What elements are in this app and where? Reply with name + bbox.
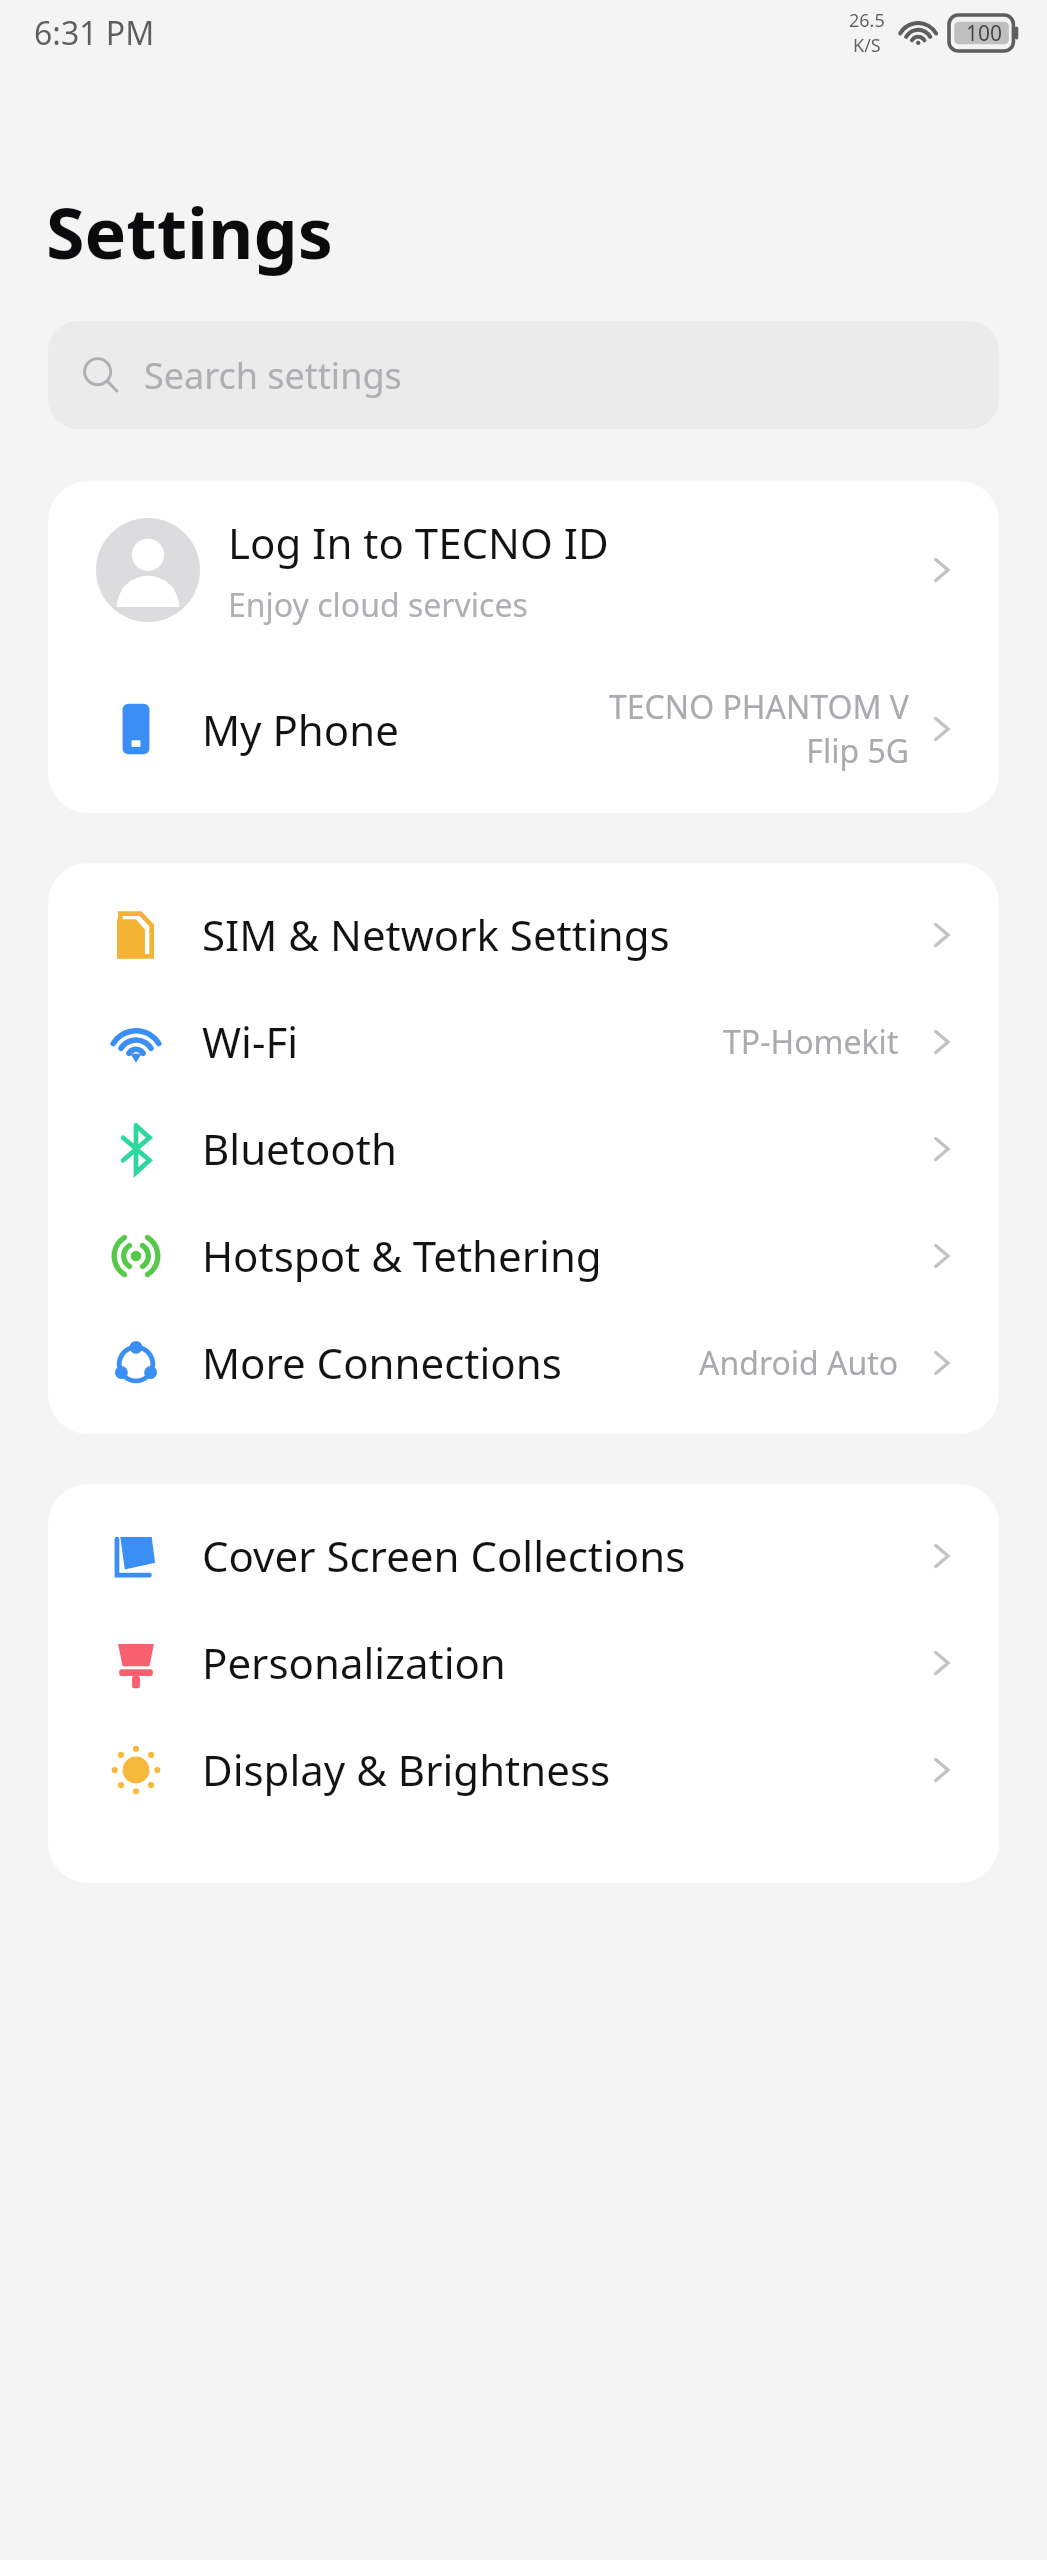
- staticText: SIM & Network Settings: [202, 906, 670, 963]
- button[interactable]: My Phone: [48, 659, 999, 799]
- staticText: Android Auto: [699, 1341, 899, 1385]
- staticText: Search settings: [144, 351, 402, 400]
- button[interactable]: Search: [48, 321, 999, 429]
- button[interactable]: Display & Brightness: [48, 1716, 999, 1823]
- staticText: Personalization: [202, 1634, 506, 1691]
- other: Search: [80, 354, 122, 396]
- staticText: Enjoy cloud services: [228, 583, 528, 627]
- staticText: 6:31 PM: [34, 11, 155, 55]
- staticText: Hotspot & Tethering: [202, 1227, 602, 1284]
- staticText: 100: [966, 19, 1003, 48]
- staticText: Log In to TECNO ID: [228, 514, 609, 571]
- staticText: My Phone: [202, 701, 399, 758]
- staticText: More Connections: [202, 1334, 562, 1391]
- button[interactable]: Wi-Fi: [48, 988, 999, 1095]
- staticText: 26.5: [849, 8, 885, 33]
- button[interactable]: Cover Screen Collections: [48, 1502, 999, 1609]
- staticText: Bluetooth: [202, 1120, 397, 1177]
- button[interactable]: More Connections: [48, 1309, 999, 1416]
- button[interactable]: Bluetooth: [48, 1095, 999, 1202]
- staticText: TP-Homekit: [723, 1020, 899, 1064]
- staticText: Display & Brightness: [202, 1741, 611, 1798]
- button[interactable]: SIM & Network Settings: [48, 881, 999, 988]
- button[interactable]: Hotspot & Tethering: [48, 1202, 999, 1309]
- button[interactable]: Personalization: [48, 1609, 999, 1716]
- staticText: K/S: [853, 33, 881, 58]
- staticText: Wi-Fi: [202, 1013, 299, 1070]
- button[interactable]: Log In to TECNO ID: [48, 481, 999, 659]
- staticText: Settings: [46, 184, 333, 279]
- staticText: Cover Screen Collections: [202, 1527, 686, 1584]
- staticText: TECNO PHANTOM V Flip 5G: [569, 685, 909, 773]
